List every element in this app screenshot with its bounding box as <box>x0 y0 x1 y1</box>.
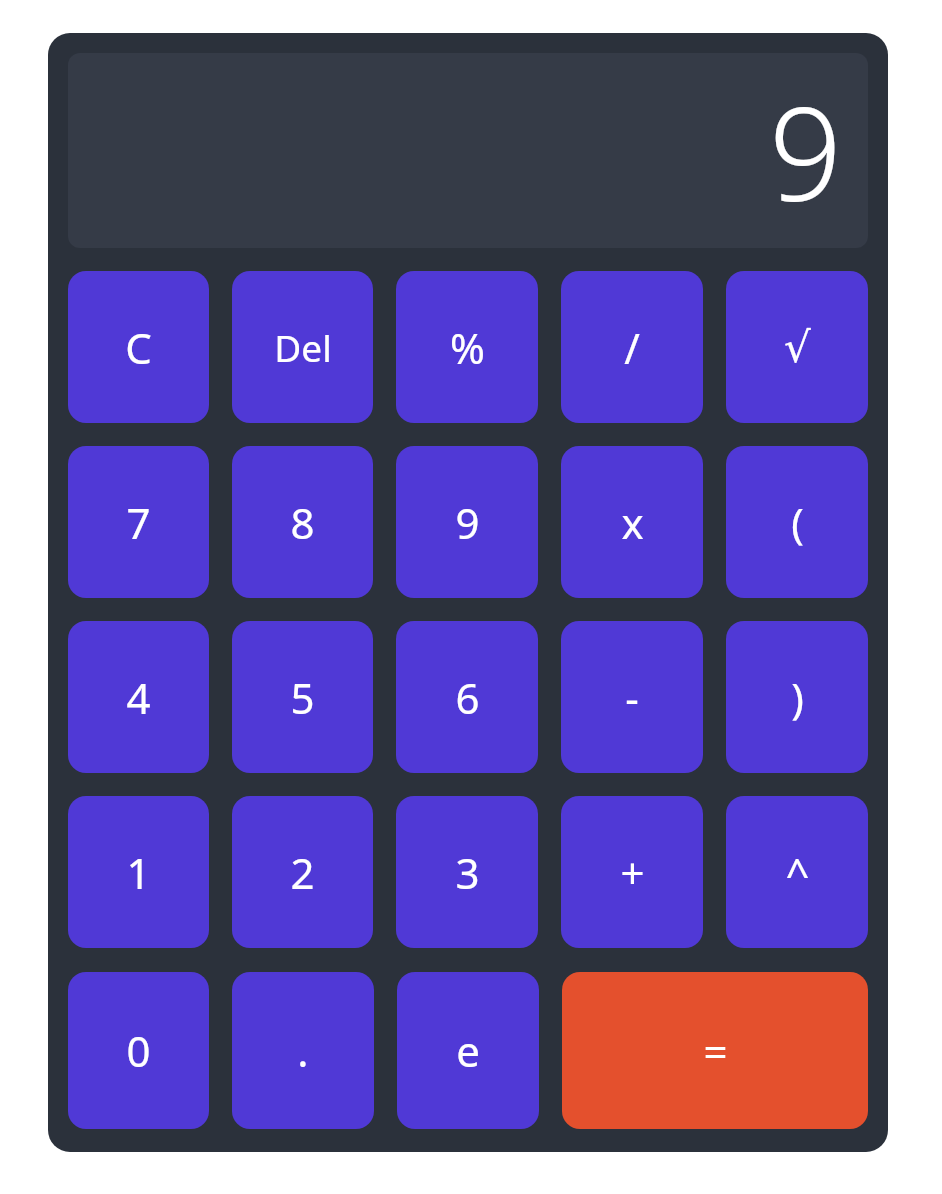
staticText: e <box>456 1022 480 1079</box>
button[interactable]: 0 <box>68 972 209 1129</box>
staticText: . <box>297 1022 309 1079</box>
staticText: + <box>620 844 645 901</box>
button[interactable]: 4 <box>68 621 209 773</box>
staticText: % <box>450 319 485 376</box>
button[interactable]: / <box>561 271 703 423</box>
staticText: √ <box>784 323 811 372</box>
staticText: / <box>624 319 640 376</box>
staticText: x <box>621 494 644 551</box>
staticText: 3 <box>455 844 480 901</box>
staticText: ( <box>791 494 804 551</box>
staticText: 9 <box>455 494 480 551</box>
button[interactable]: 5 <box>232 621 373 773</box>
staticText: 7 <box>126 494 151 551</box>
staticText: 1 <box>126 844 151 901</box>
staticText: ) <box>791 669 804 726</box>
button[interactable]: ) <box>726 621 868 773</box>
button[interactable]: ( <box>726 446 868 598</box>
staticText: = <box>703 1022 728 1079</box>
button[interactable]: 6 <box>396 621 538 773</box>
staticText: ^ <box>785 844 810 901</box>
button[interactable]: e <box>397 972 539 1129</box>
button[interactable]: x <box>561 446 703 598</box>
button[interactable]: 3 <box>396 796 538 948</box>
button[interactable]: + <box>561 796 703 948</box>
staticText: 6 <box>455 669 480 726</box>
staticText: 0 <box>126 1022 151 1079</box>
staticText: C <box>125 319 152 376</box>
button[interactable]: % <box>396 271 538 423</box>
button[interactable]: C <box>68 271 209 423</box>
button[interactable]: 9 <box>396 446 538 598</box>
button[interactable]: 8 <box>232 446 373 598</box>
button[interactable]: √ <box>726 271 868 423</box>
staticText: Del <box>274 322 332 372</box>
button[interactable]: 7 <box>68 446 209 598</box>
staticText: 9 <box>768 64 842 238</box>
button[interactable]: 1 <box>68 796 209 948</box>
button[interactable]: Del <box>232 271 373 423</box>
button[interactable]: . <box>232 972 374 1129</box>
button[interactable]: 2 <box>232 796 373 948</box>
staticText: 2 <box>290 844 315 901</box>
button[interactable]: - <box>561 621 703 773</box>
button[interactable]: ^ <box>726 796 868 948</box>
staticText: 4 <box>126 669 151 726</box>
button[interactable]: = <box>562 972 868 1129</box>
staticText: 8 <box>290 494 315 551</box>
staticText: 5 <box>290 669 315 726</box>
staticText: - <box>625 669 639 726</box>
